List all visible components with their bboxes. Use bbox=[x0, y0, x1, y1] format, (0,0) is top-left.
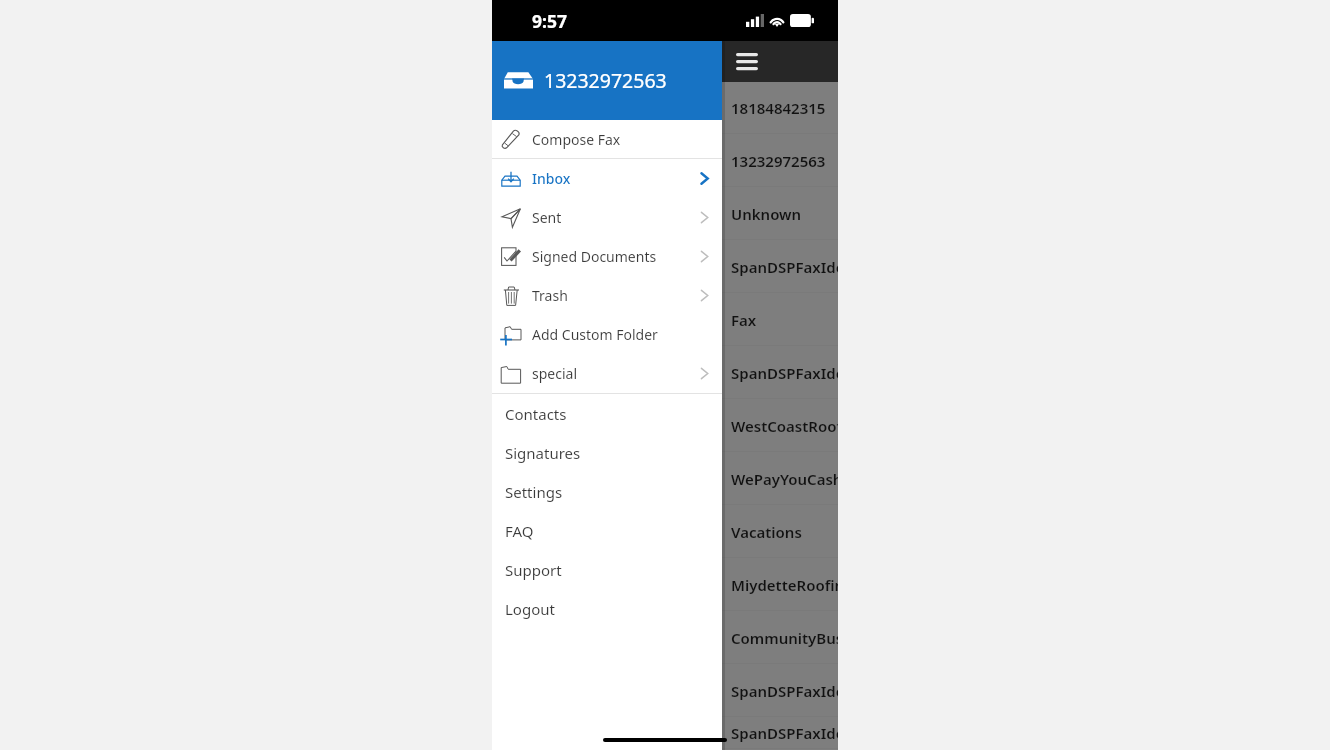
button[interactable]: Add Custom Folder bbox=[492, 315, 722, 354]
button[interactable]: 18184842315 bbox=[722, 81, 838, 134]
staticText: Vacations bbox=[731, 522, 802, 542]
staticText: WestCoastRoofing bbox=[731, 416, 838, 436]
button[interactable]: Open navigation drawer bbox=[736, 50, 760, 74]
staticText: Signatures bbox=[505, 443, 581, 463]
button[interactable]: CommunityBusiness bbox=[722, 611, 838, 664]
staticText: Signed Documents bbox=[532, 247, 657, 266]
staticText: 13232972563 bbox=[731, 151, 826, 171]
button[interactable]: SpanDSPFaxIdent bbox=[722, 240, 838, 293]
button[interactable]: SpanDSPFaxIdent bbox=[722, 664, 838, 717]
button[interactable]: Trash bbox=[492, 276, 722, 315]
button[interactable]: Compose Fax bbox=[492, 120, 722, 158]
staticText: WePayYouCash bbox=[731, 469, 838, 489]
staticText: Settings bbox=[505, 482, 563, 502]
button[interactable]: Logout bbox=[492, 589, 722, 628]
button[interactable]: 13232972563 bbox=[722, 134, 838, 187]
button[interactable]: WePayYouCash bbox=[722, 452, 838, 505]
button[interactable]: Fax bbox=[722, 293, 838, 346]
staticText: CommunityBusiness bbox=[731, 628, 838, 648]
staticText: FAQ bbox=[505, 521, 534, 541]
staticText: Trash bbox=[532, 286, 568, 305]
staticText: 13232972563 bbox=[544, 67, 667, 94]
button[interactable]: Unknown bbox=[722, 187, 838, 240]
button[interactable]: MiydetteRoofing bbox=[722, 558, 838, 611]
button[interactable]: special bbox=[492, 354, 722, 393]
staticText: Sent bbox=[532, 208, 562, 227]
staticText: Compose Fax bbox=[532, 130, 621, 149]
staticText: 9:57 bbox=[532, 9, 567, 33]
button[interactable]: Signed Documents bbox=[492, 237, 722, 276]
button[interactable]: Support bbox=[492, 550, 722, 589]
button[interactable]: Vacations bbox=[722, 505, 838, 558]
button[interactable]: Sent bbox=[492, 198, 722, 237]
button[interactable]: Signatures bbox=[492, 433, 722, 472]
staticText: Fax bbox=[731, 310, 757, 330]
staticText: SpanDSPFaxIdent bbox=[731, 681, 838, 701]
button[interactable]: SpanDSPFaxIdent bbox=[722, 717, 838, 749]
button[interactable]: Settings bbox=[492, 472, 722, 511]
button[interactable]: Inbox bbox=[492, 159, 722, 198]
staticText: Inbox bbox=[532, 169, 571, 188]
button[interactable]: 13232972563 bbox=[492, 41, 722, 120]
button[interactable]: SpanDSPFaxIdent bbox=[722, 346, 838, 399]
staticText: MiydetteRoofing bbox=[731, 575, 838, 595]
staticText: Support bbox=[505, 560, 562, 580]
button[interactable]: FAQ bbox=[492, 511, 722, 550]
button[interactable]: Contacts bbox=[492, 394, 722, 433]
staticText: special bbox=[532, 364, 578, 383]
staticText: Contacts bbox=[505, 404, 567, 424]
staticText: Add Custom Folder bbox=[532, 325, 658, 344]
staticText: 18184842315 bbox=[731, 98, 826, 118]
button[interactable]: WestCoastRoofing bbox=[722, 399, 838, 452]
staticText: Unknown bbox=[731, 204, 802, 224]
staticText: SpanDSPFaxIdent bbox=[731, 363, 838, 383]
staticText: SpanDSPFaxIdent bbox=[731, 257, 838, 277]
staticText: SpanDSPFaxIdent bbox=[731, 723, 838, 743]
staticText: Logout bbox=[505, 599, 555, 619]
